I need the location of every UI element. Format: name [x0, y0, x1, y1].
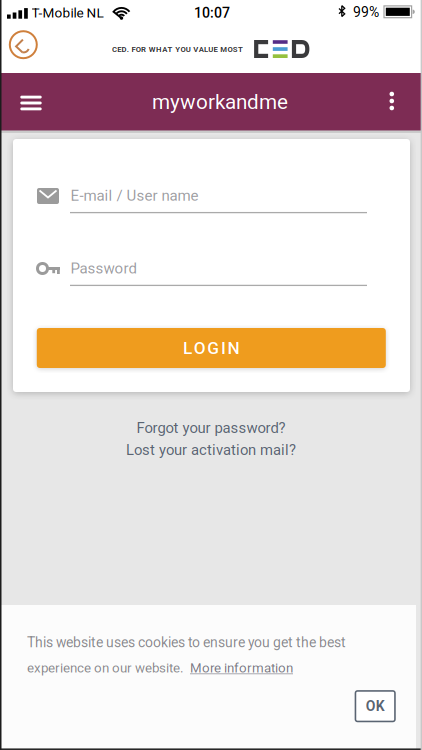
staticText: 99% [353, 4, 379, 20]
button[interactable]: More information [190, 660, 293, 676]
button[interactable]: L [37, 328, 386, 368]
button[interactable]: Lost your activation mail? [126, 441, 296, 459]
button[interactable]: Password [13, 240, 410, 296]
staticText: T-Mobile NL [31, 5, 103, 21]
button[interactable]: Back [6, 28, 40, 62]
staticText: Password [70, 259, 136, 277]
staticText: L [183, 338, 192, 358]
staticText: This website uses cookies to ensure you … [27, 634, 346, 651]
staticText: 10:07 [194, 5, 230, 21]
staticText: I [221, 338, 226, 358]
staticText: Forgot your password? [136, 419, 285, 437]
staticText: More information [190, 660, 293, 676]
staticText: CED. FOR WHAT YOU VALUE MOST [112, 45, 243, 54]
staticText: experience on our website. [27, 660, 190, 676]
staticText: myworkandme [152, 90, 288, 114]
button[interactable]: OK [355, 691, 395, 721]
button[interactable]: E-mail / User name [13, 168, 410, 224]
staticText: OK [366, 698, 385, 714]
staticText: Lost your activation mail? [126, 441, 296, 459]
button[interactable]: Forgot your password? [136, 419, 285, 437]
staticText: O [194, 338, 206, 358]
button[interactable]: More options [370, 78, 414, 124]
button[interactable]: Menu [8, 80, 54, 126]
staticText: E-mail / User name [70, 187, 198, 204]
staticText: G [207, 338, 219, 358]
staticText: N [227, 338, 239, 358]
